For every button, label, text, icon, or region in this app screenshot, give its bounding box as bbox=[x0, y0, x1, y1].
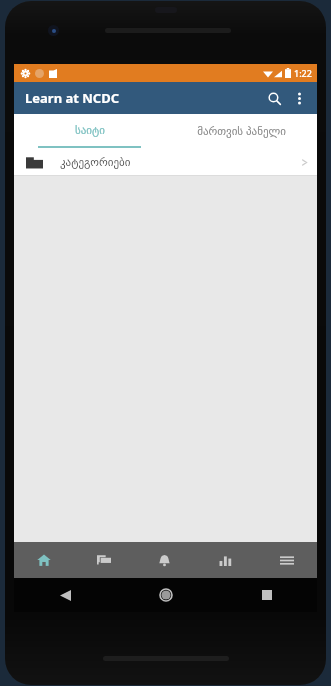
button[interactable]: Home bbox=[14, 542, 74, 578]
button[interactable]: Search bbox=[261, 85, 287, 111]
button[interactable]: მართვის პანელი bbox=[165, 114, 317, 146]
button[interactable]: More options bbox=[287, 86, 311, 110]
button[interactable]: Notifications bbox=[134, 542, 195, 578]
button[interactable]: საიტი bbox=[14, 114, 165, 146]
staticText: Learn at NCDC bbox=[25, 89, 120, 107]
button[interactable]: Messages bbox=[74, 542, 134, 578]
staticText: საიტი bbox=[75, 124, 105, 137]
staticText: კატეგორიები bbox=[60, 156, 131, 169]
button[interactable]: Menu bbox=[256, 542, 317, 578]
staticText: 1:22 bbox=[294, 67, 312, 79]
button[interactable]: Home bbox=[149, 578, 183, 612]
button[interactable]: Statistics bbox=[195, 542, 256, 578]
button[interactable]: კატეგორიები bbox=[14, 148, 317, 176]
staticText: მართვის პანელი bbox=[197, 123, 286, 138]
button[interactable]: Back bbox=[48, 578, 82, 612]
button[interactable]: Recent apps bbox=[250, 578, 284, 612]
